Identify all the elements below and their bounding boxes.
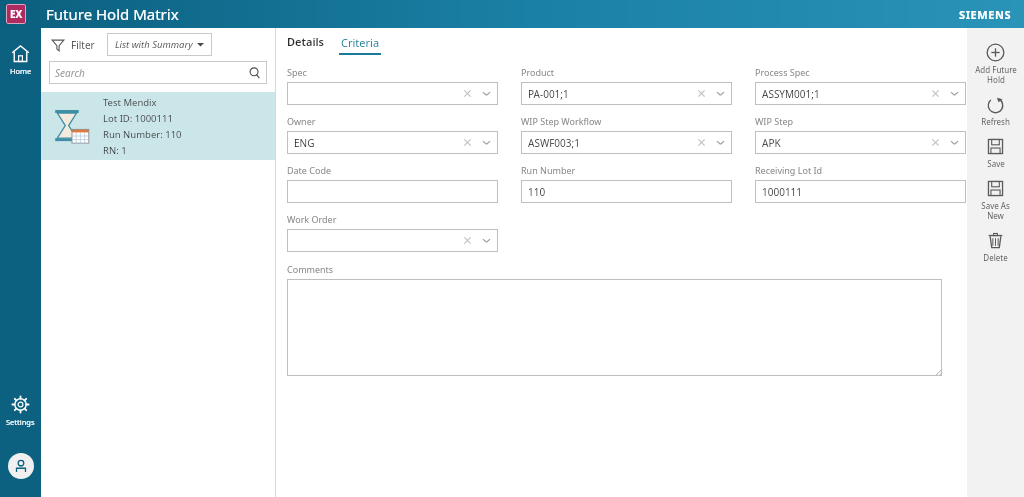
staticText: Test Mendix: [103, 96, 157, 109]
button[interactable]: Save: [967, 132, 1024, 174]
staticText: ASWF003;1: [528, 136, 697, 150]
button[interactable]: ASWF003;1: [521, 131, 732, 154]
staticText: Run Number: 110: [103, 128, 182, 141]
staticText: Product: [521, 66, 555, 78]
button[interactable]: ENG: [287, 131, 498, 154]
staticText: Criteria: [341, 35, 380, 50]
staticText: Date Code: [287, 164, 332, 176]
staticText: EX: [10, 7, 23, 21]
staticText: Delete: [983, 252, 1008, 263]
button[interactable]: APK: [755, 131, 966, 154]
button[interactable]: 110: [521, 180, 732, 203]
staticText: Settings: [6, 417, 35, 427]
staticText: 1000111: [762, 185, 959, 199]
staticText: Details: [287, 34, 325, 49]
button[interactable]: 1000111: [755, 180, 966, 203]
button[interactable]: [287, 279, 942, 376]
staticText: Save: [987, 158, 1005, 169]
staticText: RN: 1: [103, 144, 127, 157]
other: Clear Owner: [463, 138, 472, 147]
staticText: APK: [762, 136, 931, 150]
other: Open Product: [716, 89, 725, 98]
staticText: Work Order: [287, 213, 337, 225]
staticText: Add Future Hold: [975, 64, 1017, 85]
button[interactable]: PA-001;1: [521, 82, 732, 105]
other: Open WIP Step Workflow: [716, 138, 725, 147]
staticText: Home: [10, 66, 32, 76]
button[interactable]: Clear Work Order: [287, 229, 498, 252]
staticText: Refresh: [981, 116, 1010, 127]
staticText: ASSYM001;1: [762, 87, 931, 101]
button[interactable]: Search: [49, 61, 267, 84]
staticText: Comments: [287, 263, 334, 275]
other: Clear Spec: [463, 89, 472, 98]
staticText: Future Hold Matrix: [46, 4, 179, 24]
button[interactable]: List with Summary: [107, 33, 212, 56]
button[interactable]: Add Future Hold: [967, 38, 1024, 90]
staticText: Run Number: [521, 164, 576, 176]
button[interactable]: Criteria: [339, 35, 381, 55]
staticText: Receiving Lot Id: [755, 164, 823, 176]
staticText: Search: [55, 66, 85, 80]
button[interactable]: Home: [0, 40, 41, 80]
button[interactable]: App icon: [6, 4, 26, 24]
staticText: Filter: [71, 38, 95, 52]
other: Open Process Spec: [950, 89, 959, 98]
button[interactable]: Filter: [49, 35, 97, 55]
staticText: List with Summary: [115, 38, 193, 51]
button[interactable]: ASSYM001;1: [755, 82, 966, 105]
other: Open Work Order: [482, 236, 491, 245]
other: Search: [249, 67, 261, 79]
other: Clear Process Spec: [931, 89, 940, 98]
other: Clear Product: [697, 89, 706, 98]
button[interactable]: Details: [287, 34, 339, 55]
other: Open Owner: [482, 138, 491, 147]
staticText: WIP Step Workflow: [521, 115, 602, 127]
button[interactable]: Save As New: [967, 174, 1024, 226]
staticText: Save As New: [981, 200, 1010, 221]
staticText: 110: [528, 185, 725, 199]
other: Clear Work Order: [463, 236, 472, 245]
button[interactable]: Test Mendix: [41, 92, 275, 160]
button[interactable]: Delete: [967, 226, 1024, 268]
button[interactable]: Clear Spec: [287, 82, 498, 105]
other: Open Spec: [482, 89, 491, 98]
staticText: PA-001;1: [528, 87, 697, 101]
other: Clear WIP Step Workflow: [697, 138, 706, 147]
staticText: WIP Step: [755, 115, 794, 127]
staticText: Owner: [287, 115, 316, 127]
staticText: Lot ID: 1000111: [103, 112, 173, 125]
other: Clear WIP Step: [931, 138, 940, 147]
button[interactable]: Settings: [0, 391, 41, 431]
staticText: ENG: [294, 136, 463, 150]
staticText: SIEMENS: [959, 7, 1012, 22]
staticText: Spec: [287, 66, 307, 78]
button[interactable]: Refresh: [967, 90, 1024, 132]
button[interactable]: User profile: [8, 453, 34, 479]
button[interactable]: [287, 180, 498, 203]
staticText: Process Spec: [755, 66, 810, 78]
other: Open WIP Step: [950, 138, 959, 147]
